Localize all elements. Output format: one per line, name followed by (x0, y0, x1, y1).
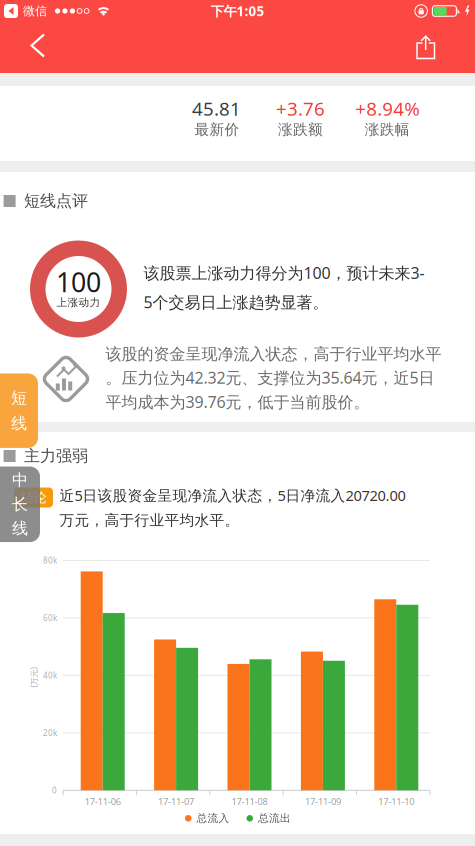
staticText: 短线点评 (24, 191, 88, 211)
staticText: 涨跌幅 (365, 120, 410, 138)
button[interactable]: 分享 (404, 25, 448, 70)
staticText: 主力强弱 (24, 446, 88, 466)
staticText: 60k (43, 613, 57, 623)
button[interactable]: 中长线 (0, 467, 40, 542)
staticText: 17-11-06 (85, 795, 121, 807)
staticText: 该股的资金呈现净流入状态，高于行业平均水平 。压力位为42.32元、支撑位为35… (105, 344, 441, 412)
staticText: 100 (56, 264, 101, 300)
staticText: 线 (12, 519, 28, 538)
staticText: 80k (43, 555, 57, 566)
staticText: +3.76 (276, 96, 325, 121)
staticText: 40k (43, 670, 57, 681)
staticText: 下午1:05 (210, 2, 264, 20)
staticText: 近5日该股资金呈现净流入状态，5日净流入20720.00 万元，高于行业平均水平… (59, 485, 405, 529)
staticText: 涨跌额 (278, 120, 323, 138)
staticText: 17-11-08 (231, 795, 267, 807)
staticText: 总流出 (258, 812, 291, 825)
staticText: 线 (11, 414, 27, 433)
staticText: 17-11-07 (158, 795, 194, 807)
staticText: 17-11-09 (305, 795, 341, 807)
staticText: 0 (52, 785, 57, 796)
staticText: 上涨动力 (56, 296, 100, 309)
staticText: +8.94% (355, 96, 420, 121)
staticText: 结论 (20, 489, 46, 506)
staticText: 微信 (23, 4, 47, 18)
staticText: 长 (12, 494, 28, 514)
button[interactable]: 短线 (0, 373, 38, 448)
staticText: (万元) (24, 672, 44, 683)
staticText: 17-11-10 (378, 795, 414, 807)
staticText: 中 (12, 470, 28, 490)
staticText: 总流入 (196, 812, 229, 825)
button[interactable]: 返回 (16, 23, 60, 68)
staticText: 短 (11, 388, 27, 408)
staticText: 45.81 (192, 96, 241, 121)
staticText: 最新价 (194, 120, 239, 138)
staticText: 该股票上涨动力得分为100，预计未来3- 5个交易日上涨趋势显著。 (143, 262, 424, 313)
staticText: 20k (43, 727, 57, 738)
